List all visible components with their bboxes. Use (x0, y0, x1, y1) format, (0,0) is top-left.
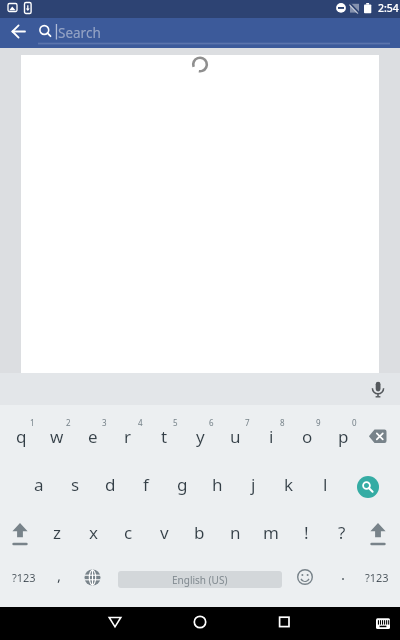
button[interactable] (0, 18, 400, 48)
staticText: 8 (280, 417, 285, 428)
staticText: l (323, 473, 328, 496)
staticText: p (338, 425, 349, 448)
button[interactable]: u (211, 420, 259, 452)
staticText: e (88, 425, 98, 448)
button[interactable]: ! (282, 516, 330, 548)
staticText: 5 (173, 417, 178, 428)
staticText: 1 (30, 417, 35, 428)
button[interactable]: , (35, 559, 83, 591)
button[interactable]: m (247, 516, 295, 548)
button[interactable]: r (104, 420, 152, 452)
button[interactable]: b (175, 516, 223, 548)
staticText: u (230, 425, 241, 448)
button[interactable]: Search (58, 18, 388, 48)
staticText: h (212, 473, 223, 496)
staticText: . (341, 564, 346, 584)
button[interactable]: ?123 (353, 561, 400, 593)
staticText: 2:54 (378, 1, 399, 15)
button[interactable]: g (158, 468, 206, 500)
button[interactable]: a (15, 468, 63, 500)
staticText: ?123 (12, 570, 36, 585)
staticText: i (269, 425, 274, 448)
staticText: 6 (209, 417, 214, 428)
button[interactable] (357, 476, 379, 498)
staticText: x (89, 521, 98, 544)
button[interactable]: x (69, 516, 117, 548)
staticText: t (161, 425, 168, 448)
button[interactable]: h (193, 468, 241, 500)
button[interactable]: . (319, 558, 367, 590)
button[interactable]: t (140, 420, 188, 452)
staticText: g (177, 473, 188, 496)
staticText: s (71, 473, 80, 496)
button[interactable]: English (US) (118, 571, 282, 588)
staticText: Search (58, 24, 101, 42)
staticText: m (263, 521, 279, 544)
button[interactable]: z (33, 516, 81, 548)
staticText: ?123 (365, 570, 389, 585)
button[interactable]: e (69, 420, 117, 452)
staticText: f (143, 473, 149, 496)
button[interactable]: j (229, 468, 277, 500)
staticText: z (53, 521, 61, 544)
staticText: 2 (66, 417, 71, 428)
button[interactable]: c (104, 516, 152, 548)
button[interactable]: d (86, 468, 134, 500)
button[interactable]: o (283, 420, 331, 452)
staticText: , (57, 565, 62, 585)
button[interactable]: s (51, 468, 99, 500)
button[interactable]: w (33, 420, 81, 452)
staticText: r (124, 425, 132, 448)
staticText: 9 (316, 417, 321, 428)
staticText: 3 (102, 417, 107, 428)
staticText: k (284, 473, 294, 496)
button[interactable] (268, 607, 300, 639)
button[interactable]: q (0, 420, 45, 452)
button[interactable] (99, 607, 131, 639)
button[interactable]: y (176, 420, 224, 452)
staticText: ? (338, 521, 346, 544)
staticText: d (105, 473, 116, 496)
button[interactable]: v (140, 516, 188, 548)
staticText: n (230, 521, 241, 544)
staticText: q (16, 425, 27, 448)
staticText: 0 (352, 417, 357, 428)
staticText: 7 (245, 417, 250, 428)
button[interactable]: i (247, 420, 295, 452)
button[interactable]: p (319, 420, 367, 452)
button[interactable] (184, 607, 216, 639)
staticText: w (50, 425, 64, 448)
staticText: c (124, 521, 133, 544)
button[interactable]: n (211, 516, 259, 548)
button[interactable] (368, 607, 398, 639)
staticText: a (34, 473, 44, 496)
button[interactable] (4, 18, 34, 48)
button[interactable]: ?123 (0, 561, 48, 593)
staticText: v (160, 521, 169, 544)
staticText: b (194, 521, 205, 544)
button[interactable]: k (265, 468, 313, 500)
staticText: English (US) (172, 573, 228, 587)
staticText: 4 (138, 417, 143, 428)
staticText: ! (304, 521, 309, 544)
staticText: j (251, 473, 256, 496)
staticText: o (302, 425, 313, 448)
button[interactable]: f (122, 468, 170, 500)
staticText: y (196, 425, 205, 448)
button[interactable]: ? (318, 516, 366, 548)
button[interactable]: l (301, 468, 349, 500)
